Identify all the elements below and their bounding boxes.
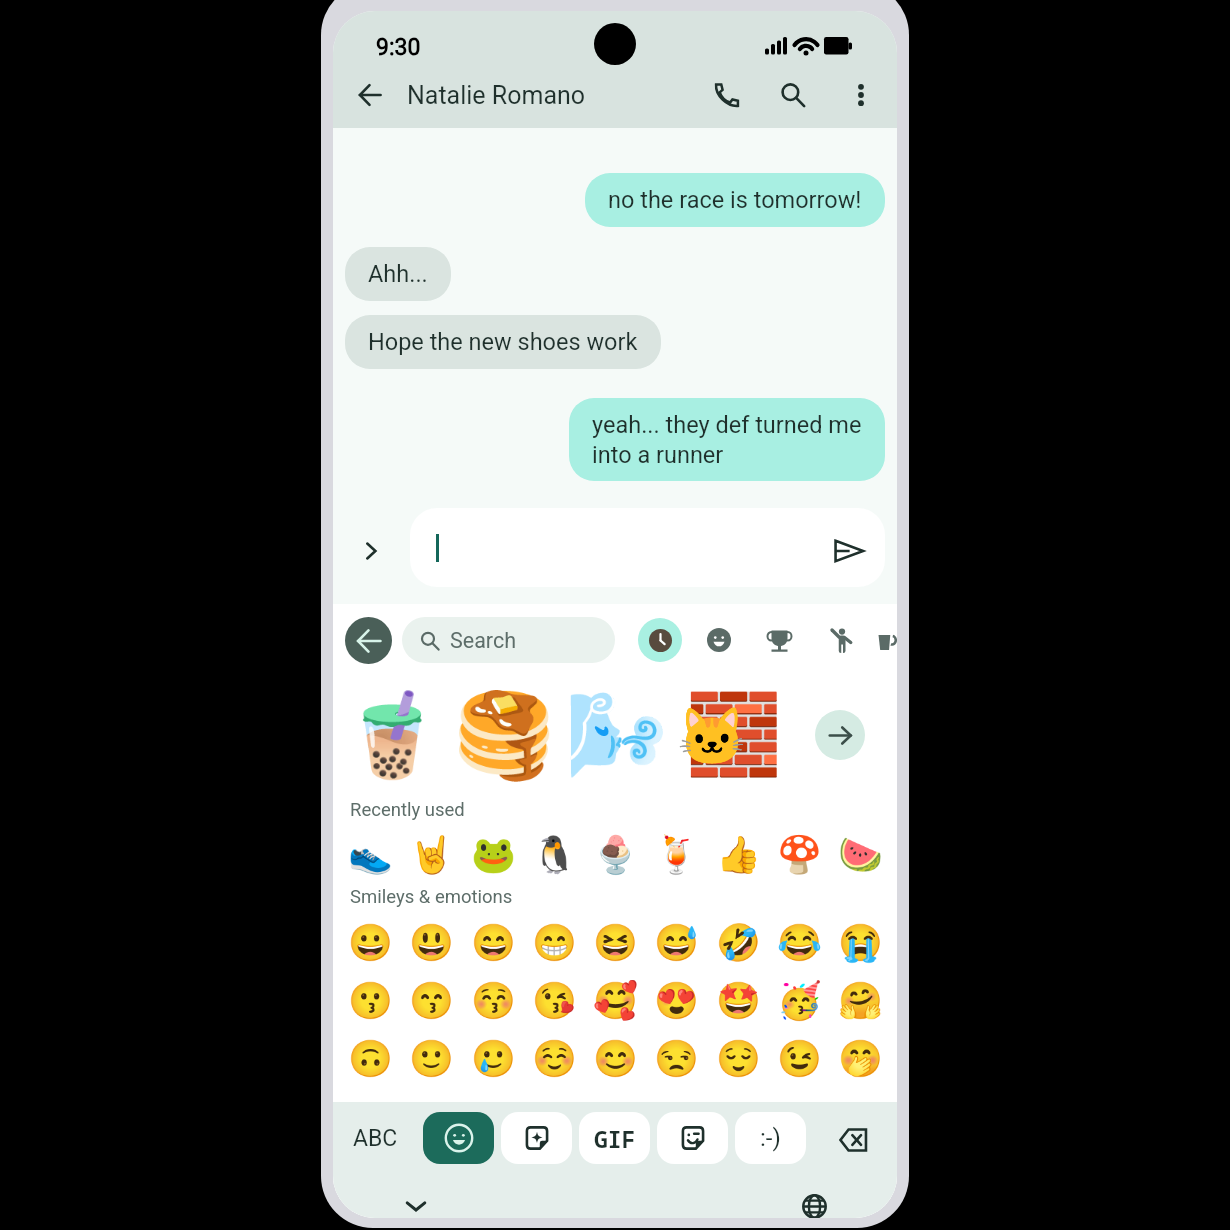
staticText: 9:30 xyxy=(376,34,421,61)
button[interactable]: 🥰 xyxy=(588,974,642,1028)
staticText: 😁 xyxy=(532,922,577,964)
button[interactable]: More stickers xyxy=(815,710,865,760)
button[interactable]: Show more options xyxy=(348,525,394,571)
staticText: GIF xyxy=(594,1123,636,1154)
button[interactable]: Back xyxy=(347,72,393,118)
staticText: 😌 xyxy=(716,1038,761,1080)
staticText: 😉 xyxy=(777,1038,822,1080)
button[interactable]: ABC xyxy=(333,1112,417,1164)
button[interactable]: 🥞 xyxy=(448,679,560,791)
button[interactable]: 🤘 xyxy=(404,828,458,882)
button[interactable]: Recently used xyxy=(638,618,682,662)
button[interactable]: 🍉 xyxy=(833,828,887,882)
button[interactable]: 😂 xyxy=(772,916,826,970)
staticText: 🙂 xyxy=(409,1038,454,1080)
button[interactable]: 🧋 xyxy=(336,679,448,791)
button[interactable]: Search xyxy=(402,617,615,663)
staticText: Natalie Romano xyxy=(407,81,586,110)
staticText: 🧱 xyxy=(685,689,783,781)
button[interactable]: Avatar stickers xyxy=(657,1112,728,1164)
staticText: 😗 xyxy=(348,980,393,1022)
button[interactable]: 😌 xyxy=(711,1032,765,1086)
staticText: 🐱 xyxy=(677,704,747,770)
button[interactable]: 🐧 xyxy=(527,828,581,882)
staticText: 😍 xyxy=(654,980,699,1022)
button[interactable]: 😭 xyxy=(833,916,887,970)
button[interactable]: 🥳 xyxy=(772,974,826,1028)
button[interactable]: 😄 xyxy=(466,916,520,970)
button[interactable]: 😉 xyxy=(772,1032,826,1086)
button[interactable]: 🙂 xyxy=(404,1032,458,1086)
button[interactable]: 🍹 xyxy=(649,828,703,882)
button[interactable]: no the race is tomorrow! xyxy=(585,173,885,227)
button[interactable]: Change language xyxy=(794,1186,834,1218)
button[interactable]: Emoji xyxy=(423,1112,494,1164)
button[interactable]: 😘 xyxy=(527,974,581,1028)
button[interactable]: 😒 xyxy=(649,1032,703,1086)
button[interactable]: 🤣 xyxy=(711,916,765,970)
staticText: 🤗 xyxy=(838,980,883,1022)
button[interactable]: 🙃 xyxy=(343,1032,397,1086)
button[interactable]: 😊 xyxy=(588,1032,642,1086)
staticText: yeah... they def turned me into a runner xyxy=(592,411,862,468)
staticText: 🥲 xyxy=(471,1038,516,1080)
button[interactable]: 🥲 xyxy=(466,1032,520,1086)
button[interactable]: Stickers xyxy=(501,1112,572,1164)
button[interactable]: 🌬️ xyxy=(560,679,672,791)
button[interactable]: 👍 xyxy=(711,828,765,882)
button[interactable]: People xyxy=(816,617,862,663)
button[interactable]: 😍 xyxy=(649,974,703,1028)
staticText: 😆 xyxy=(593,922,638,964)
staticText: :-) xyxy=(760,1124,781,1152)
staticText: 🤣 xyxy=(716,922,761,964)
staticText: 😄 xyxy=(471,922,516,964)
button[interactable]: 😙 xyxy=(404,974,458,1028)
staticText: 😭 xyxy=(838,922,883,964)
button[interactable]: More options xyxy=(837,71,885,119)
button[interactable]: Send xyxy=(410,508,885,587)
other: Send xyxy=(833,535,865,567)
staticText: 🍄 xyxy=(777,834,822,876)
button[interactable]: 😅 xyxy=(649,916,703,970)
staticText: 😚 xyxy=(471,980,516,1022)
button[interactable]: 😁 xyxy=(527,916,581,970)
button[interactable]: Call xyxy=(703,71,751,119)
button[interactable]: 🍨 xyxy=(588,828,642,882)
button[interactable]: Hide keyboard xyxy=(396,1186,436,1218)
staticText: 😙 xyxy=(409,980,454,1022)
button[interactable]: 😃 xyxy=(404,916,458,970)
button[interactable]: ☺️ xyxy=(527,1032,581,1086)
button[interactable]: Emoticons xyxy=(735,1112,806,1164)
staticText: 😂 xyxy=(777,922,822,964)
staticText: 🍉 xyxy=(838,834,883,876)
button[interactable]: Ahh... xyxy=(345,247,451,301)
button[interactable]: Backspace xyxy=(826,1111,880,1165)
staticText: 🙃 xyxy=(348,1038,393,1080)
staticText: 😃 xyxy=(409,922,454,964)
staticText: 🧋 xyxy=(341,687,444,783)
button[interactable]: 😀 xyxy=(343,916,397,970)
button[interactable]: 🍄 xyxy=(772,828,826,882)
button[interactable]: 🤭 xyxy=(833,1032,887,1086)
button[interactable]: 🐸 xyxy=(466,828,520,882)
button[interactable]: GIF xyxy=(579,1112,650,1164)
button[interactable]: Smileys and emotions xyxy=(696,617,742,663)
button[interactable]: 😆 xyxy=(588,916,642,970)
staticText: Smileys & emotions xyxy=(350,886,513,908)
button[interactable]: 😗 xyxy=(343,974,397,1028)
button[interactable]: Search xyxy=(769,71,817,119)
button[interactable]: Activities xyxy=(756,617,802,663)
button[interactable]: 🧱 xyxy=(672,679,784,791)
button[interactable]: 😚 xyxy=(466,974,520,1028)
button[interactable]: yeah... they def turned me into a runner xyxy=(569,398,885,481)
staticText: 😒 xyxy=(654,1038,699,1080)
button[interactable]: Hope the new shoes work xyxy=(345,315,661,369)
button[interactable]: 🤩 xyxy=(711,974,765,1028)
staticText: 👟 xyxy=(348,834,393,876)
button[interactable]: Food and drink xyxy=(876,617,897,663)
button[interactable]: 👟 xyxy=(343,828,397,882)
button[interactable]: 🤗 xyxy=(833,974,887,1028)
button[interactable]: Back to keyboard xyxy=(345,617,392,664)
staticText: 👍 xyxy=(716,834,761,876)
staticText: Hope the new shoes work xyxy=(368,328,638,356)
